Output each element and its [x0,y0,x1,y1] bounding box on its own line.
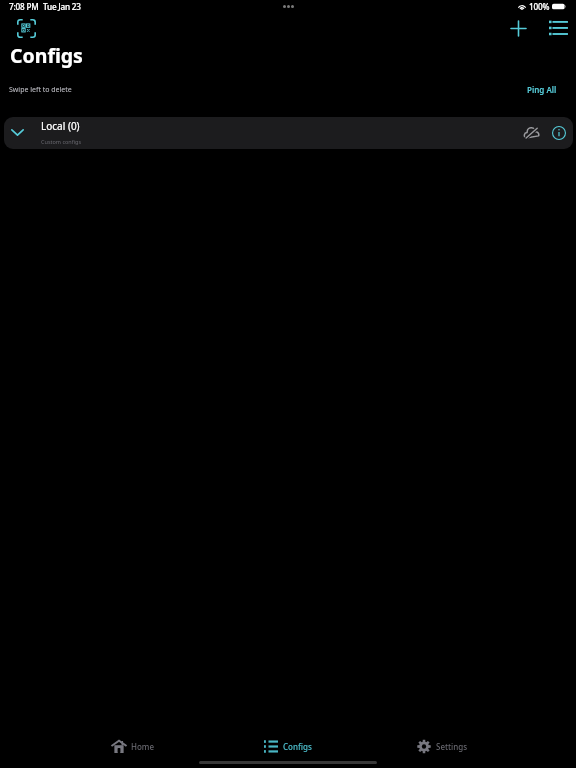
staticText: Ping All [527,84,557,95]
button[interactable]: Info [546,120,572,146]
staticText: 7:08 PM [9,1,39,12]
button[interactable]: Ping All [518,80,566,99]
staticText: Tue Jan 23 [43,1,81,12]
button[interactable]: Collapse section [4,119,31,146]
staticText: Settings [436,741,468,752]
button[interactable]: Settings [365,733,520,759]
button[interactable]: Add config [503,13,534,44]
button[interactable]: Configs [210,733,365,759]
button[interactable]: Home [56,733,210,759]
staticText: Swipe left to delete [9,85,72,95]
staticText: Custom configs [41,138,82,145]
staticText: Local (0) [41,119,80,133]
staticText: 100% [529,1,550,12]
staticText: Configs [10,42,83,69]
button[interactable]: Scan QR code [11,13,42,44]
button[interactable]: Collapse section [4,117,573,149]
staticText: Home [131,741,155,752]
button[interactable]: Sort list [542,12,573,43]
button[interactable]: Cloud sync disabled [518,120,544,146]
staticText: Configs [283,741,312,752]
